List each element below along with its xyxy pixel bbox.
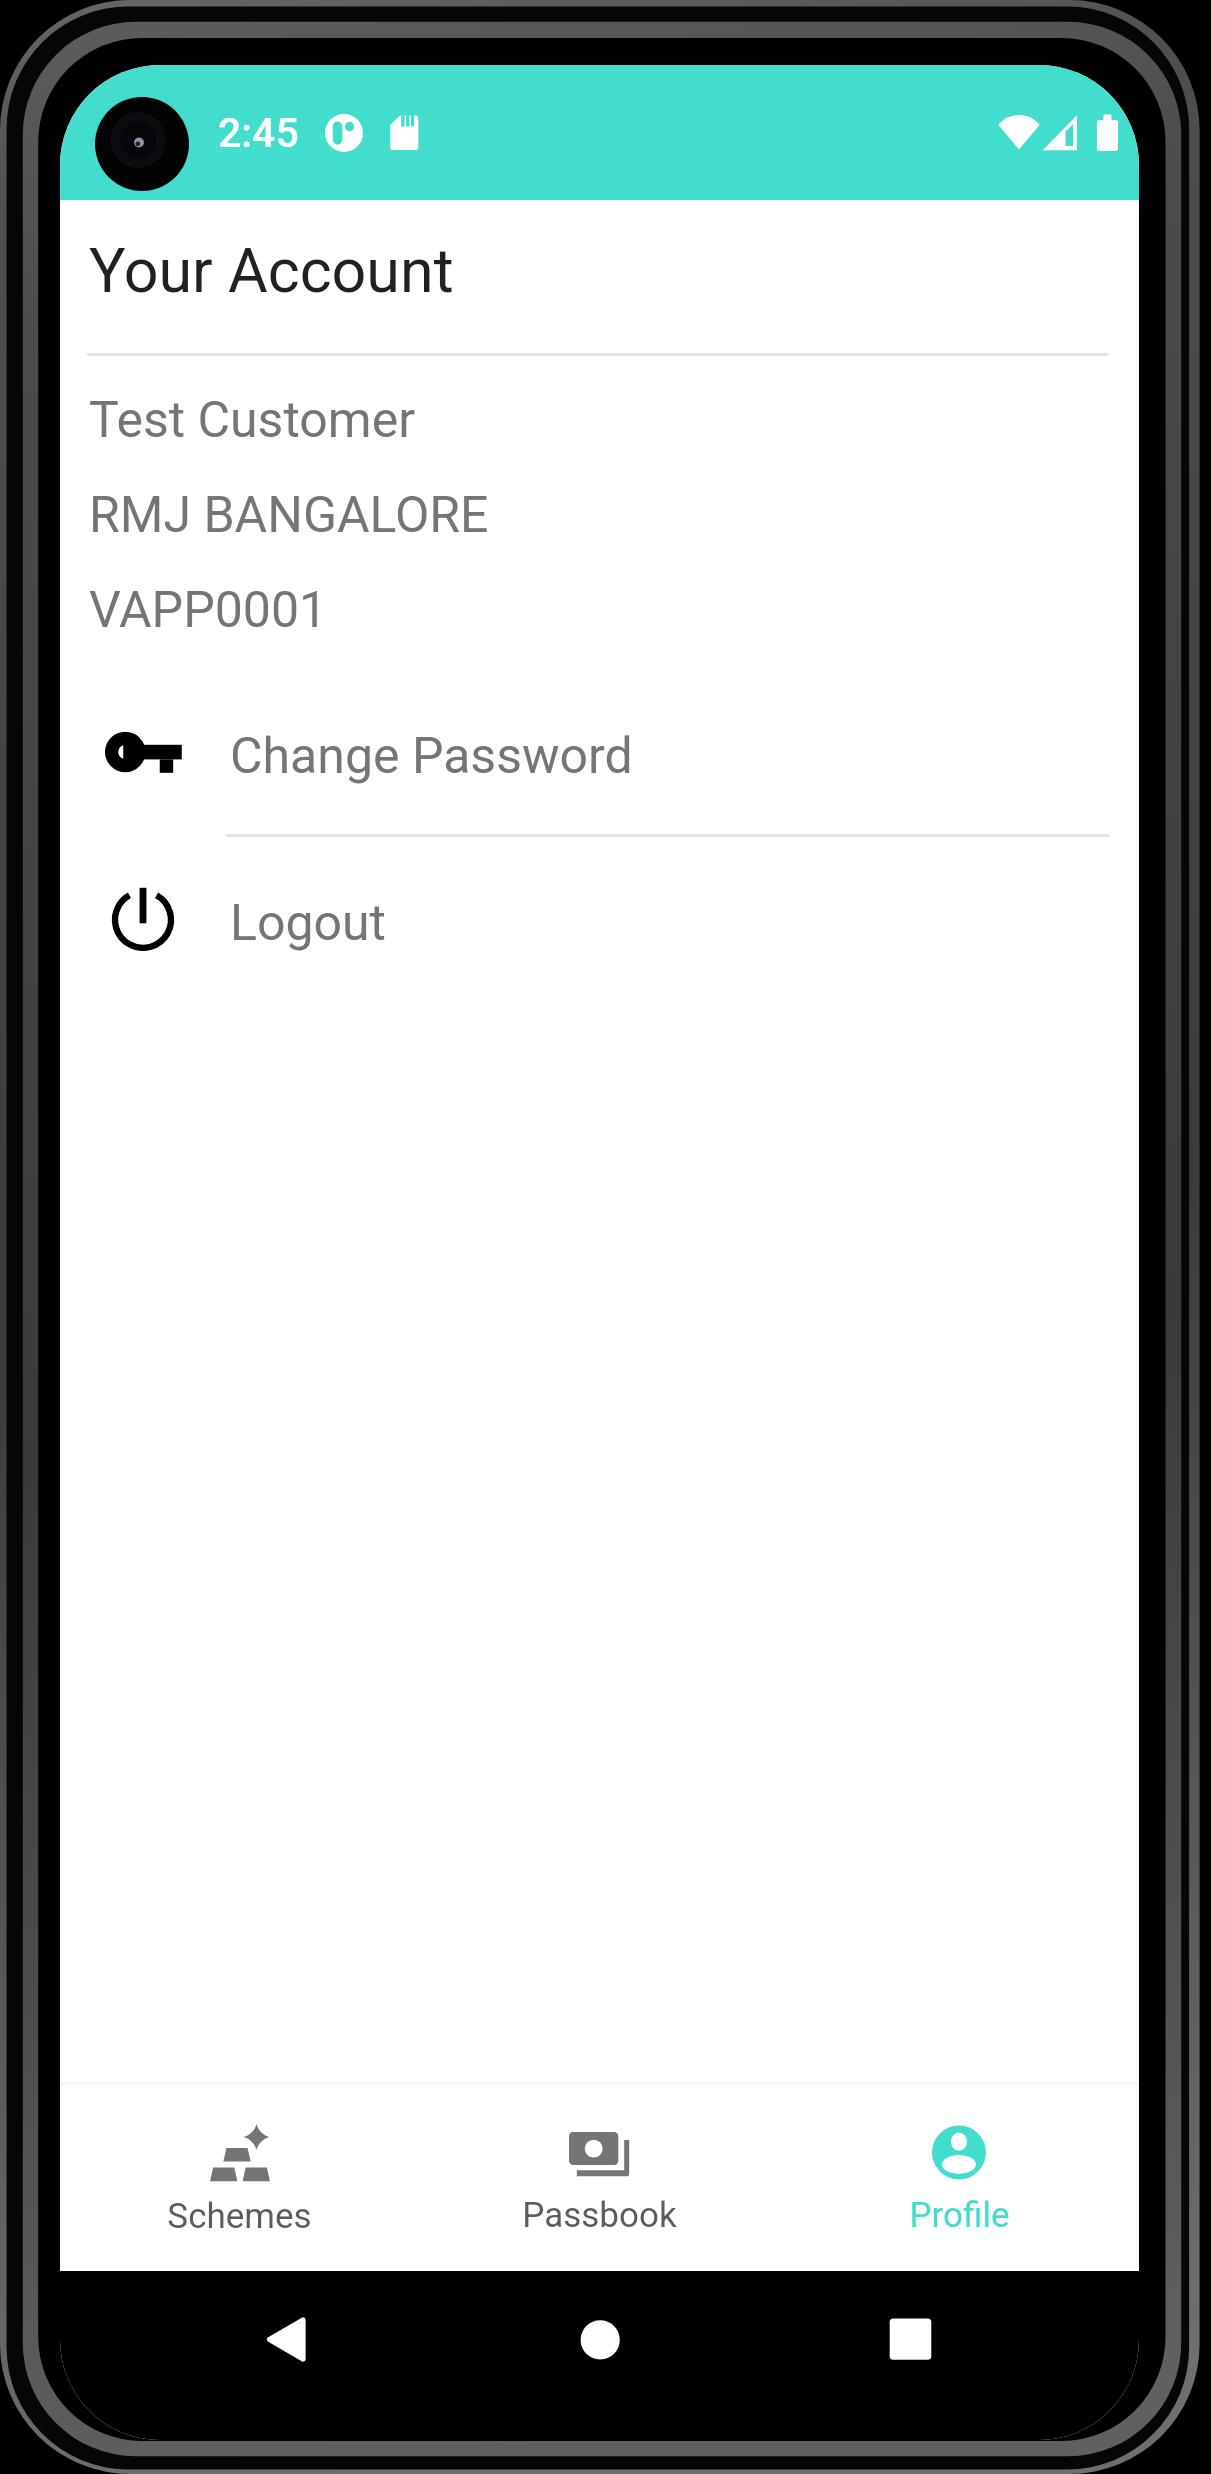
staticText: Your Account bbox=[89, 235, 454, 306]
staticText: 2:45 bbox=[218, 109, 299, 157]
button[interactable]: Passbook bbox=[419, 2085, 779, 2271]
staticText: Schemes bbox=[167, 2196, 312, 2237]
button[interactable]: Recents bbox=[867, 2297, 953, 2383]
button[interactable]: Logout bbox=[60, 835, 1139, 992]
staticText: VAPP0001 bbox=[89, 581, 328, 640]
staticText: Test Customer bbox=[89, 391, 416, 450]
staticText: RMJ BANGALORE bbox=[89, 486, 489, 545]
staticText: Profile bbox=[909, 2195, 1010, 2236]
staticText: Change Password bbox=[230, 727, 633, 786]
button[interactable]: Back bbox=[243, 2297, 329, 2383]
button[interactable]: Home bbox=[557, 2297, 643, 2383]
button[interactable]: Profile bbox=[779, 2085, 1139, 2271]
staticText: Passbook bbox=[522, 2195, 677, 2236]
button[interactable]: Schemes bbox=[60, 2085, 419, 2271]
button[interactable]: Change Password bbox=[60, 677, 1139, 834]
staticText: Logout bbox=[230, 894, 386, 953]
